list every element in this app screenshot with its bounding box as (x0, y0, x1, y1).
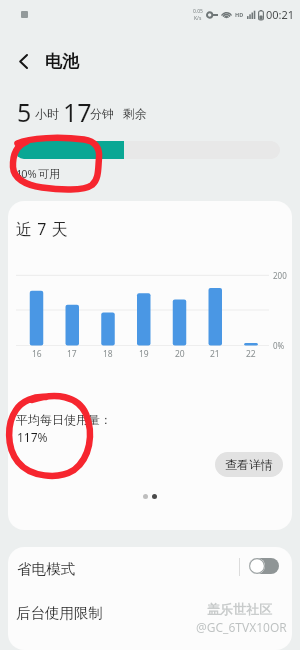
staticText: 分钟 (90, 106, 114, 121)
staticText: 查看详情 (225, 457, 273, 472)
staticText: 电池 (45, 51, 79, 72)
staticText: K/s (194, 15, 202, 22)
staticText: 19 (139, 348, 149, 360)
staticText: 近 7 天 (16, 218, 69, 240)
staticText: 0% (273, 340, 285, 351)
button[interactable]: 省电模式 (8, 547, 292, 590)
staticText: 40% (15, 166, 37, 181)
staticText: 22 (246, 348, 256, 360)
staticText: 0.05 (193, 8, 203, 15)
staticText: 200 (273, 270, 287, 281)
staticText: 盖乐世社区 (207, 601, 272, 617)
staticText: 21 (210, 348, 220, 360)
staticText: 剩余 (123, 106, 147, 121)
staticText: 20 (175, 348, 185, 360)
staticText: 平均每日使用量： (16, 412, 112, 427)
staticText: @GC_6TVX10OR (196, 619, 287, 635)
staticText: 117% (17, 429, 48, 445)
staticText: 00:21 (266, 7, 295, 22)
staticText: 省电模式 (17, 560, 75, 578)
staticText: 17 (67, 348, 77, 360)
button[interactable]: Back (8, 46, 38, 76)
button[interactable]: 后台使用限制 (8, 590, 292, 633)
staticText: 17 (63, 95, 92, 129)
staticText: 小时 (35, 106, 59, 121)
staticText: 18 (103, 348, 113, 360)
staticText: 5 (17, 95, 32, 129)
staticText: 16 (32, 348, 42, 360)
staticText: HD (235, 11, 244, 18)
staticText: 后台使用限制 (16, 604, 103, 622)
staticText: 可用 (38, 167, 60, 181)
button[interactable]: 查看详情 (215, 452, 283, 477)
button[interactable]: Power saving toggle (249, 558, 279, 574)
